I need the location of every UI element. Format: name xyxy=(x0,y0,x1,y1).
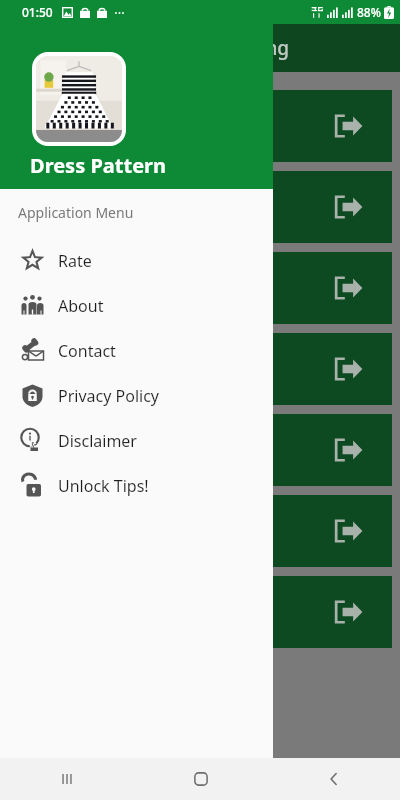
button[interactable]: Privacy Policy xyxy=(0,373,273,418)
staticText: Disclaimer xyxy=(58,430,137,452)
button[interactable]: Summer Dress xyxy=(8,576,392,648)
button[interactable]: About xyxy=(0,283,273,328)
staticText: Sewing Dress xyxy=(22,115,134,138)
button[interactable]: Home xyxy=(134,758,267,800)
staticText: Kids Dress xyxy=(22,277,109,300)
staticText: Dress Pattern xyxy=(30,152,167,179)
staticText: Rate xyxy=(58,250,92,272)
button[interactable]: Recent apps xyxy=(0,758,134,800)
staticText: About xyxy=(58,295,104,317)
button[interactable]: Rate xyxy=(0,238,273,283)
button[interactable]: Simple Dress xyxy=(8,171,392,243)
staticText: Simple Dress xyxy=(22,196,131,219)
button[interactable]: Disclaimer xyxy=(0,418,273,463)
button[interactable]: Back xyxy=(267,758,400,800)
staticText: Contact xyxy=(58,340,116,362)
button[interactable]: Sewing Dress xyxy=(8,90,392,162)
staticText: Application Menu xyxy=(18,203,134,222)
button[interactable]: Unlock Tips! xyxy=(0,463,273,508)
button[interactable]: Maxi Dress xyxy=(8,333,392,405)
button[interactable]: Party Dress xyxy=(8,495,392,567)
staticText: Unlock Tips! xyxy=(58,475,149,497)
button[interactable]: Long Dress xyxy=(8,414,392,486)
staticText: Sewing xyxy=(224,35,290,61)
staticText: Privacy Policy xyxy=(58,385,159,407)
staticText: 01:50 xyxy=(22,4,53,20)
staticText: 88% xyxy=(357,4,381,20)
button[interactable]: Kids Dress xyxy=(8,252,392,324)
staticText: Long Dress xyxy=(22,439,116,462)
staticText: Maxi Dress xyxy=(22,358,115,381)
button[interactable]: Contact xyxy=(0,328,273,373)
